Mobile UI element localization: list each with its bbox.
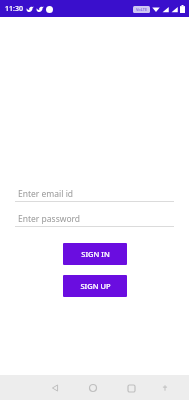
button[interactable]: Recent apps (119, 376, 143, 400)
button[interactable]: Enter email id (15, 186, 174, 202)
staticText: VoLTE (136, 7, 148, 12)
staticText: 11:30 (5, 4, 23, 14)
staticText: SIGN IN (81, 249, 110, 259)
button[interactable]: Enter password (15, 211, 174, 227)
button[interactable]: Hide keyboard (155, 378, 175, 398)
button[interactable]: Home (81, 376, 105, 400)
staticText: Enter email id (18, 188, 74, 200)
staticText: SIGN UP (80, 281, 111, 291)
button[interactable]: SIGN IN (63, 243, 127, 265)
button[interactable]: Back (43, 376, 67, 400)
staticText: Enter password (18, 213, 81, 225)
button[interactable]: SIGN UP (63, 275, 127, 297)
